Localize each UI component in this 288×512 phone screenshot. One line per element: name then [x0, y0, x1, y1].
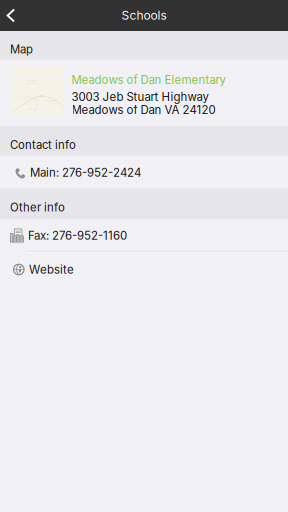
- staticText: Schools: [121, 8, 166, 23]
- staticText: Other info: [10, 201, 65, 214]
- staticText: Contact info: [10, 138, 76, 152]
- staticText: Main: 276-952-2424: [30, 166, 141, 179]
- button[interactable]: Fax: 276-952-1160: [0, 219, 288, 253]
- button[interactable]: Website: [0, 253, 288, 285]
- staticText: Meadows of Dan VA 24120: [71, 103, 215, 117]
- staticText: Meadows of Dan Elementary: [71, 73, 225, 87]
- staticText: Map: [10, 43, 33, 56]
- staticText: 3003 Jeb Stuart Highway: [71, 90, 208, 104]
- button[interactable]: Meadows of Dan Elementary: [0, 60, 288, 126]
- button[interactable]: Main: 276-952-2424: [0, 156, 288, 188]
- staticText: Fax: 276-952-1160: [28, 229, 127, 242]
- staticText: Website: [29, 263, 74, 276]
- button[interactable]: Back: [0, 0, 44, 31]
